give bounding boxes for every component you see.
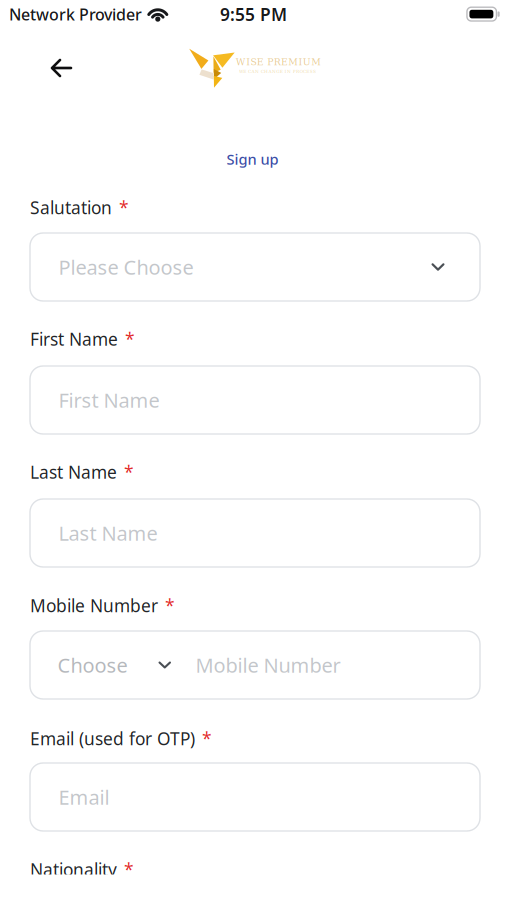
staticText: * bbox=[202, 727, 212, 750]
staticText: Email (used for OTP) bbox=[30, 727, 195, 750]
staticText: Sign up bbox=[226, 149, 278, 169]
staticText: Last Name bbox=[58, 520, 157, 546]
staticText: Please Choose bbox=[58, 254, 193, 280]
staticText: * bbox=[124, 858, 134, 881]
staticText: Network Provider bbox=[9, 4, 142, 25]
button[interactable]: Back bbox=[41, 49, 82, 87]
button[interactable]: Last Name bbox=[30, 499, 480, 567]
staticText: Mobile Number bbox=[30, 594, 158, 617]
staticText: * bbox=[119, 196, 129, 219]
staticText: Mobile Number bbox=[195, 652, 340, 678]
staticText: * bbox=[125, 327, 135, 350]
staticText: WE CAN CHANGE IN PROCESS bbox=[239, 69, 316, 74]
staticText: Last Name bbox=[30, 460, 117, 483]
staticText: Email bbox=[58, 784, 109, 810]
button[interactable]: Sign up bbox=[222, 146, 282, 172]
staticText: 9:55 PM bbox=[220, 3, 287, 26]
button[interactable]: First Name bbox=[30, 366, 480, 434]
staticText: WISE PREMIUM bbox=[236, 57, 321, 67]
button[interactable]: Email bbox=[30, 763, 480, 831]
button[interactable]: Please Choose bbox=[30, 233, 480, 301]
staticText: Choose bbox=[57, 652, 127, 678]
staticText: First Name bbox=[30, 327, 118, 350]
button[interactable]: Choose bbox=[30, 631, 480, 699]
staticText: * bbox=[165, 594, 175, 617]
staticText: Nationality bbox=[30, 858, 117, 881]
staticText: Salutation bbox=[30, 196, 112, 219]
staticText: First Name bbox=[58, 387, 159, 413]
staticText: * bbox=[124, 460, 134, 483]
